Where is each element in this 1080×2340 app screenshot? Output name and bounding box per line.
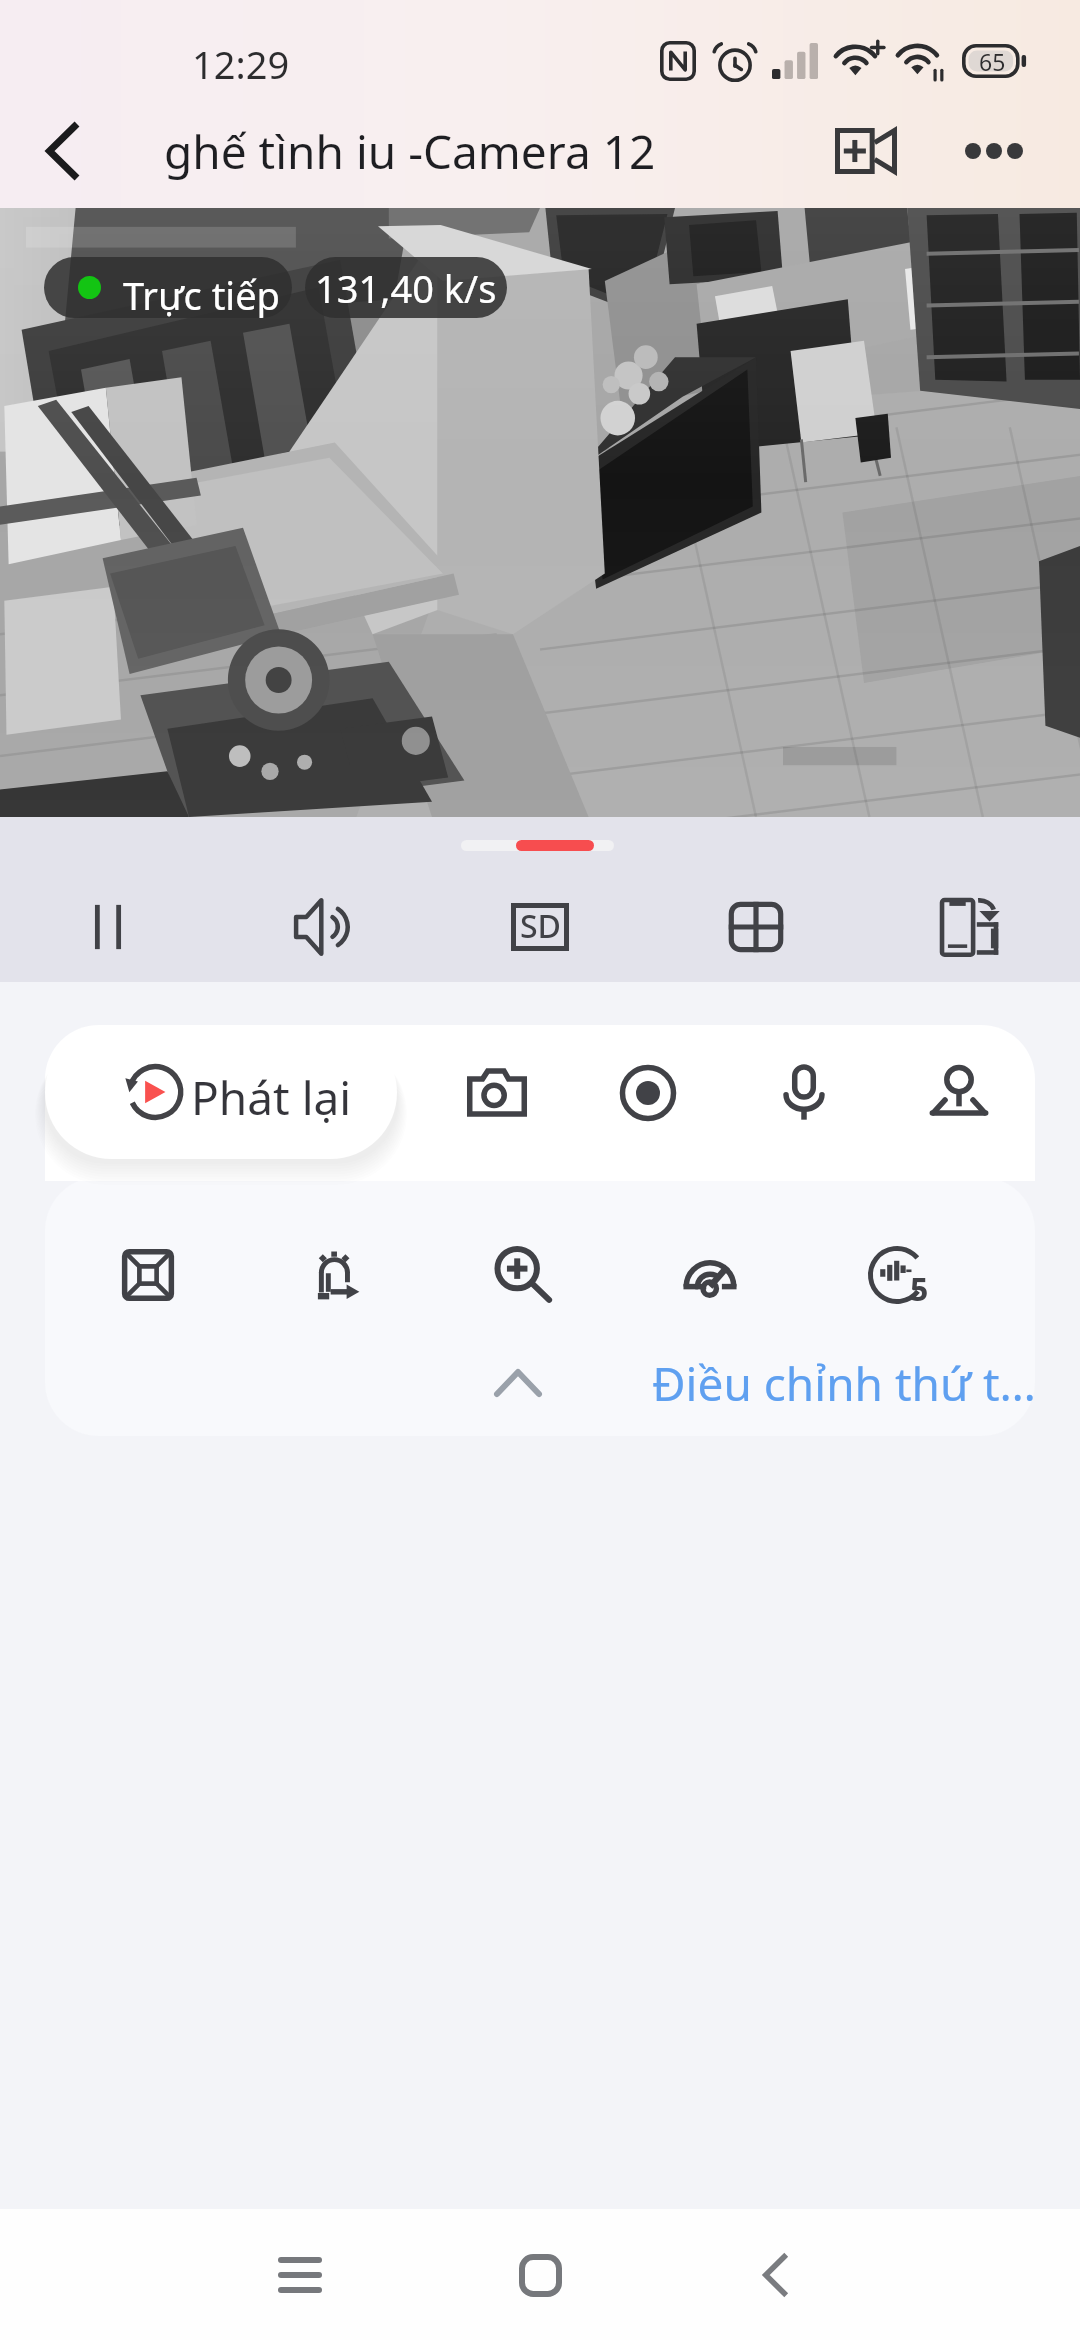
- staticText: ghế tình iu -Camera 12: [164, 120, 656, 183]
- button[interactable]: Sound detection level 5: [855, 1233, 939, 1317]
- button[interactable]: Person detection: [917, 1051, 1001, 1135]
- staticText: 12:29: [192, 38, 290, 90]
- staticText: Điều chỉnh thứ t…: [652, 1352, 1035, 1415]
- staticText: 65: [979, 46, 1006, 77]
- button[interactable]: Recent apps: [235, 2210, 365, 2340]
- button[interactable]: Split view: [648, 872, 864, 982]
- button[interactable]: Speed: [668, 1233, 752, 1317]
- staticText: Phát lại: [191, 1066, 352, 1129]
- button[interactable]: Pan tilt zoom: [106, 1233, 190, 1317]
- button[interactable]: Home: [475, 2210, 605, 2340]
- button[interactable]: Trực tiếp: [44, 257, 292, 318]
- button[interactable]: Back: [710, 2210, 840, 2340]
- button[interactable]: Add camera: [818, 103, 914, 199]
- button[interactable]: Back: [15, 104, 109, 198]
- button[interactable]: Digital zoom: [481, 1233, 565, 1317]
- button[interactable]: Rotate screen: [864, 872, 1080, 982]
- staticText: SD: [520, 904, 561, 948]
- button[interactable]: Pause: [0, 872, 216, 982]
- staticText: 131,40 k/s: [315, 262, 497, 314]
- button[interactable]: Phát lại: [45, 1026, 397, 1159]
- button[interactable]: More options: [946, 103, 1042, 199]
- button[interactable]: Điều chỉnh thứ t…: [45, 1330, 1035, 1436]
- staticText: Trực tiếp: [123, 269, 280, 318]
- button[interactable]: Video quality SD: [432, 872, 648, 982]
- button[interactable]: Record: [606, 1051, 690, 1135]
- button[interactable]: Microphone: [762, 1051, 846, 1135]
- staticText: 5: [910, 1267, 929, 1311]
- button[interactable]: Volume: [216, 872, 432, 982]
- button[interactable]: Snapshot: [455, 1051, 539, 1135]
- button[interactable]: 131,40 k/s: [305, 257, 507, 318]
- button[interactable]: Siren: [293, 1233, 377, 1317]
